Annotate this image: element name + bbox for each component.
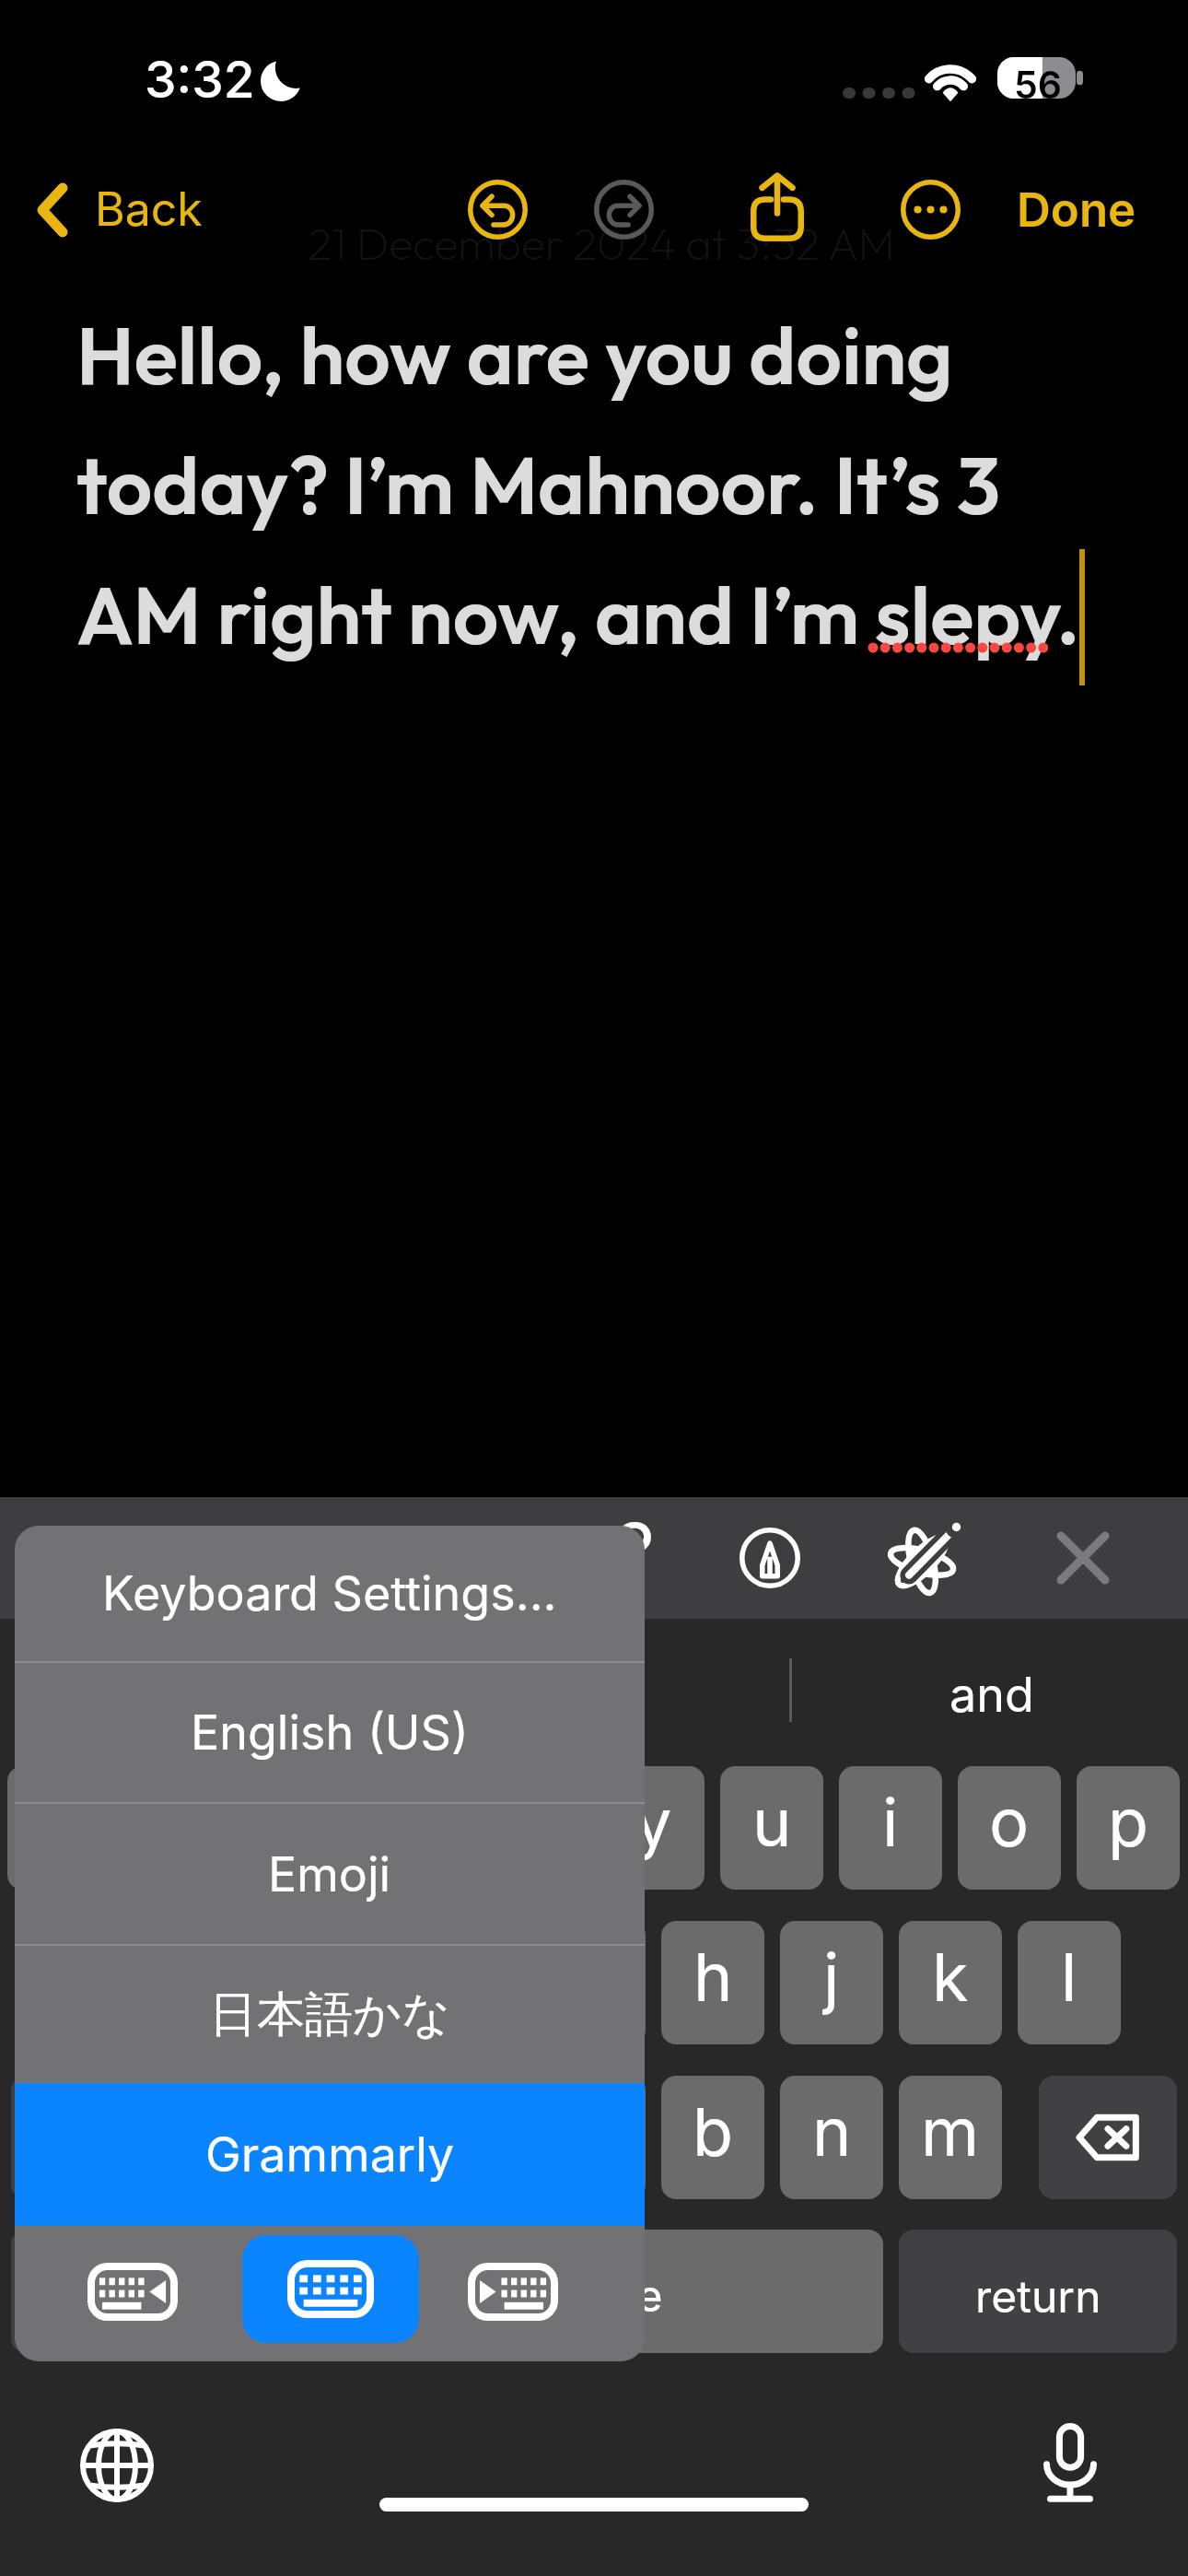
button[interactable]: More options [891, 170, 970, 249]
button[interactable]: space [315, 2230, 883, 2353]
staticText: l [1061, 1937, 1077, 2017]
staticText: Back [95, 181, 203, 237]
staticText: p [1108, 1782, 1149, 1862]
button[interactable]: z [186, 2076, 289, 2199]
staticText: u [752, 1782, 792, 1862]
button[interactable]: Grammarly [15, 2083, 645, 2226]
staticText: r [402, 1782, 428, 1862]
button[interactable]: Rewrite [883, 1516, 968, 1600]
button[interactable]: v [542, 2076, 646, 2199]
button[interactable]: return [899, 2230, 1177, 2353]
staticText: and [949, 1666, 1034, 1724]
button[interactable]: Emoji [165, 2230, 299, 2353]
staticText: Done [1017, 181, 1136, 239]
button[interactable]: a [67, 1921, 170, 2044]
staticText: z [219, 2091, 256, 2172]
button[interactable]: Next keyboard [443, 2235, 583, 2348]
button[interactable]: s [186, 1921, 289, 2044]
button[interactable]: p [1077, 1766, 1180, 1890]
staticText: x [338, 2091, 375, 2172]
button[interactable]: k [899, 1921, 1002, 2044]
staticText: f [463, 1937, 488, 2017]
button[interactable]: 123 [11, 2230, 149, 2353]
button[interactable]: f [424, 1921, 527, 2044]
button[interactable]: d [305, 1921, 408, 2044]
button[interactable]: e [245, 1766, 348, 1890]
button[interactable]: x [305, 2076, 408, 2199]
button[interactable]: Previous keyboard [63, 2235, 203, 2348]
staticText: g [574, 1937, 615, 2017]
button[interactable]: m [899, 2076, 1002, 2199]
button[interactable]: w [126, 1766, 229, 1890]
button[interactable]: q [7, 1766, 111, 1890]
button[interactable]: Share [740, 162, 814, 251]
button[interactable]: Keyboard Settings... [15, 1526, 645, 1661]
button[interactable]: Switch keyboard [74, 2422, 160, 2509]
button[interactable]: y [601, 1766, 705, 1890]
button[interactable]: c [424, 2076, 527, 2199]
button[interactable]: g [542, 1921, 646, 2044]
staticText: return [975, 2269, 1101, 2323]
button[interactable]: t [483, 1766, 586, 1890]
staticText: n [812, 2091, 852, 2172]
button[interactable]: n [780, 2076, 883, 2199]
button[interactable]: 日本語かな [15, 1946, 645, 2083]
button[interactable]: l [1018, 1921, 1121, 2044]
button[interactable]: Dictation [1027, 2419, 1113, 2506]
button[interactable]: Shift [11, 2076, 149, 2199]
button[interactable]: Delete [1039, 2076, 1177, 2199]
staticText: ? [615, 1505, 655, 1598]
staticText: Keyboard Settings... [102, 1564, 557, 1622]
button[interactable]: Redo [585, 170, 663, 249]
staticText: y [635, 1782, 672, 1862]
button[interactable]: Undo [459, 170, 537, 249]
staticText: w [151, 1782, 205, 1862]
button[interactable]: Back [22, 173, 217, 247]
staticText: j [823, 1937, 840, 2017]
staticText: b [693, 2091, 734, 2172]
button[interactable]: b [661, 2076, 764, 2199]
button[interactable]: Current keyboard [242, 2235, 419, 2343]
button[interactable]: Emoji [15, 1804, 645, 1944]
staticText: q [39, 1782, 80, 1862]
staticText: a [100, 1937, 138, 2017]
staticText: 21 December 2024 at 3:32 AM [7, 216, 1188, 271]
staticText: Hello, how are you doing [76, 281, 953, 411]
button[interactable]: Tone detector [728, 1516, 812, 1600]
staticText: t [523, 1782, 545, 1862]
staticText: Emoji [268, 1845, 391, 1903]
staticText: s [220, 1937, 256, 2017]
staticText: English (US) [191, 1704, 469, 1762]
staticText: space [536, 2268, 663, 2322]
button[interactable]: Done [1000, 171, 1153, 247]
staticText: d [336, 1937, 378, 2017]
button[interactable]: h [661, 1921, 764, 2044]
staticText: m [921, 2091, 980, 2172]
button[interactable]: r [364, 1766, 467, 1890]
staticText: k [932, 1937, 969, 2017]
staticText: e [277, 1782, 316, 1862]
button[interactable]: j [780, 1921, 883, 2044]
button[interactable]: English (US) [15, 1663, 645, 1802]
staticText: Grammarly [205, 2125, 455, 2184]
staticText: today? I’m Mahnoor. It’s 3 [76, 411, 1001, 541]
staticText: AM right now, and I’m slepy. [76, 541, 1080, 671]
button[interactable]: u [720, 1766, 823, 1890]
staticText: 3:32 [145, 49, 255, 111]
staticText: 123 [45, 2266, 115, 2317]
button[interactable]: Close [1041, 1516, 1125, 1600]
staticText: 56 [1014, 62, 1063, 104]
staticText: o [989, 1782, 1030, 1862]
staticText: i [882, 1782, 899, 1862]
staticText: 日本語かな [209, 1985, 451, 2045]
staticText: h [693, 1937, 733, 2017]
button[interactable]: i [839, 1766, 942, 1890]
button[interactable]: o [958, 1766, 1061, 1890]
